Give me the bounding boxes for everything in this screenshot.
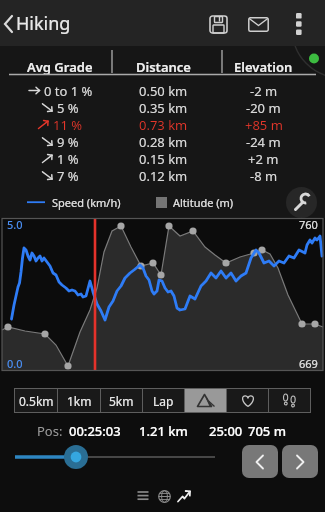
staticText: +2 m: [248, 150, 279, 167]
button[interactable]: [152, 484, 176, 508]
button[interactable]: [5, 444, 225, 470]
button[interactable]: 5km: [101, 389, 142, 412]
staticText: 669: [299, 356, 318, 371]
staticText: 1 %: [57, 150, 79, 167]
staticText: 5.0: [7, 217, 23, 232]
staticText: 0.15 km: [139, 150, 188, 167]
staticText: Avg Grade: [27, 58, 93, 76]
staticText: 1.21 km: [139, 422, 188, 440]
staticText: 7 %: [57, 167, 79, 184]
staticText: 0.35 km: [139, 99, 188, 116]
staticText: -2 m: [250, 82, 278, 99]
button[interactable]: [284, 6, 314, 42]
staticText: 0.0: [7, 356, 23, 371]
staticText: Elevation: [234, 58, 293, 76]
staticText: 705 m: [248, 422, 286, 440]
button[interactable]: 0.5km: [15, 389, 57, 412]
staticText: +85 m: [245, 116, 283, 133]
staticText: Pos:: [37, 422, 63, 440]
button[interactable]: [269, 389, 310, 412]
staticText: 0.73 km: [139, 116, 188, 133]
button[interactable]: [286, 187, 317, 218]
staticText: 0.12 km: [139, 167, 188, 184]
staticText: 11 %: [53, 116, 83, 133]
staticText: Speed (km/h): [52, 195, 121, 210]
button[interactable]: Hiking: [0, 11, 71, 36]
staticText: Lap: [153, 393, 174, 409]
staticText: Hiking: [16, 11, 71, 36]
staticText: 0.5km: [19, 393, 54, 409]
staticText: -24 m: [246, 133, 281, 150]
button[interactable]: [185, 389, 226, 412]
button[interactable]: 1km: [58, 389, 100, 412]
staticText: 0.28 km: [139, 133, 188, 150]
staticText: 0 to 1 %: [44, 82, 93, 99]
staticText: 5 %: [57, 99, 79, 116]
button[interactable]: [200, 6, 236, 42]
staticText: 0.50 km: [139, 82, 188, 99]
button[interactable]: [172, 484, 196, 508]
button[interactable]: [227, 389, 268, 412]
staticText: 9 %: [57, 133, 79, 150]
button[interactable]: [131, 484, 155, 508]
button[interactable]: Lap: [143, 389, 184, 412]
staticText: 00:25:03: [69, 422, 121, 440]
staticText: 1km: [67, 393, 92, 409]
staticText: 5km: [109, 393, 134, 409]
staticText: Distance: [136, 58, 191, 76]
button[interactable]: [242, 445, 278, 478]
staticText: -8 m: [250, 167, 278, 184]
staticText: 25:00: [209, 422, 243, 440]
staticText: 760: [299, 217, 318, 232]
staticText: Altitude (m): [173, 195, 234, 210]
staticText: -20 m: [246, 99, 281, 116]
button[interactable]: [282, 445, 318, 478]
button[interactable]: [240, 6, 276, 42]
